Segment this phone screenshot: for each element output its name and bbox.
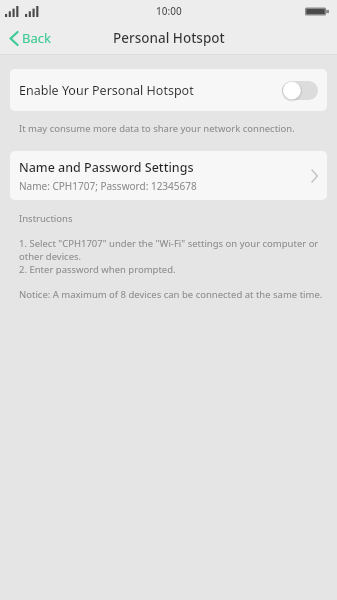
button[interactable]: Name and Password Settings: [10, 151, 327, 200]
staticText: Notice: A maximum of 8 devices can be co…: [19, 288, 323, 301]
staticText: Enable Your Personal Hotspot: [19, 82, 282, 99]
staticText: Back: [22, 29, 51, 47]
other: Open: [311, 170, 318, 182]
staticText: 1. Select "CPH1707" under the "Wi-Fi" se…: [19, 237, 323, 263]
staticText: 2. Enter password when prompted.: [19, 263, 176, 276]
staticText: Name and Password Settings: [19, 159, 194, 176]
button[interactable]: Enable Your Personal Hotspot: [10, 69, 327, 111]
button[interactable]: Enable Your Personal Hotspot toggle: [282, 81, 318, 100]
staticText: Instructions: [19, 212, 73, 225]
staticText: Personal Hotspot: [113, 29, 225, 47]
staticText: It may consume more data to share your n…: [19, 122, 295, 135]
staticText: Name: CPH1707; Password: 12345678: [19, 179, 197, 193]
staticText: 10:00: [156, 4, 182, 18]
button[interactable]: Back: [0, 25, 61, 51]
